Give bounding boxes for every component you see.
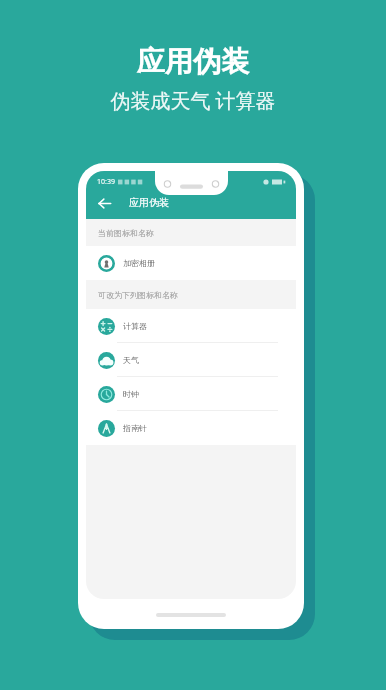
staticText: 天气 (123, 355, 139, 365)
staticText: 应用伪装 (137, 44, 249, 79)
staticText: 加密相册 (123, 258, 155, 268)
staticText: 当前图标和名称 (98, 228, 154, 238)
staticText: 伪装成天气 计算器 (110, 87, 276, 114)
button[interactable]: Back (94, 193, 114, 213)
button[interactable]: 天气 (86, 343, 296, 377)
staticText: 可改为下列图标和名称 (98, 290, 178, 300)
staticText: 指南针 (123, 423, 147, 433)
button[interactable]: 指南针 (86, 411, 296, 445)
staticText: 应用伪装 (129, 196, 169, 209)
button[interactable]: 加密相册 (86, 246, 296, 280)
staticText: 计算器 (123, 321, 147, 331)
button[interactable]: 时钟 (86, 377, 296, 411)
staticText: 10:39 (97, 177, 115, 187)
staticText: 时钟 (123, 389, 139, 399)
button[interactable]: 计算器 (86, 309, 296, 343)
